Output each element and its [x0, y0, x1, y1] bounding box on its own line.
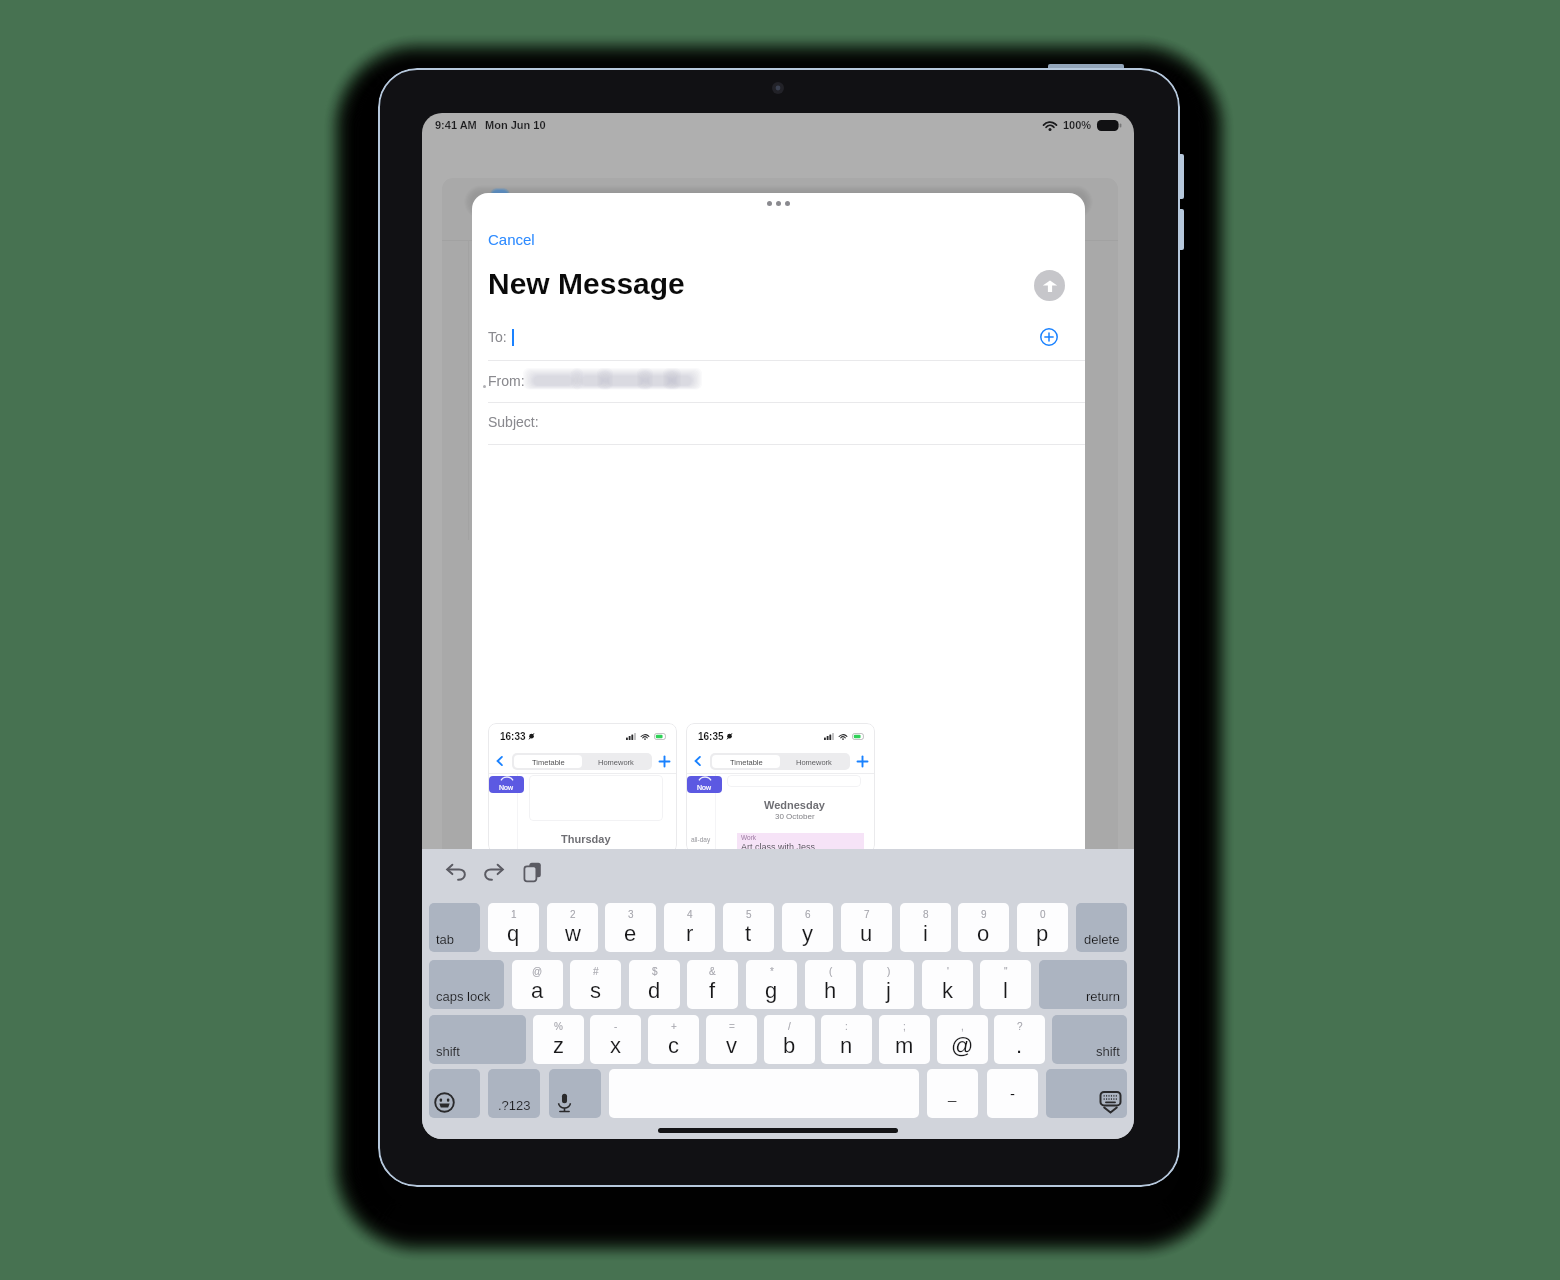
staticText: To:: [488, 329, 507, 345]
button[interactable]: .?123: [488, 1069, 540, 1118]
button[interactable]: return: [1039, 960, 1127, 1009]
staticText: Subject:: [488, 414, 539, 430]
button[interactable]: delete: [1076, 903, 1127, 952]
staticText: 4: [687, 909, 693, 920]
button[interactable]: Paste: [520, 859, 546, 885]
staticText: Wednesday: [764, 799, 825, 811]
staticText: caps lock: [436, 989, 491, 1004]
staticText: t: [745, 921, 752, 946]
staticText: r: [686, 921, 694, 946]
button[interactable]: 0: [1017, 903, 1068, 952]
button[interactable]: #: [570, 960, 621, 1009]
staticText: shift: [1096, 1044, 1120, 1059]
staticText: x: [610, 1033, 621, 1058]
button[interactable]: ): [863, 960, 914, 1009]
staticText: m: [895, 1033, 914, 1058]
button[interactable]: 6: [782, 903, 833, 952]
staticText: 8: [923, 909, 929, 920]
button[interactable]: +: [648, 1015, 699, 1064]
button[interactable]: (: [805, 960, 856, 1009]
button[interactable]: From:: [488, 370, 1085, 392]
staticText: g: [765, 978, 778, 1003]
staticText: i: [923, 921, 928, 946]
staticText: :: [845, 1021, 848, 1032]
button[interactable]: 9: [958, 903, 1009, 952]
button[interactable]: Redo: [481, 859, 507, 885]
button[interactable]: /: [764, 1015, 815, 1064]
staticText: $: [652, 966, 658, 977]
staticText: 7: [864, 909, 870, 920]
staticText: 2: [570, 909, 576, 920]
button[interactable]: Send: [1034, 270, 1065, 301]
button[interactable]: shift: [1052, 1015, 1127, 1064]
button[interactable]: 1: [488, 903, 539, 952]
staticText: New Message: [488, 267, 685, 301]
button[interactable]: Hide keyboard: [1046, 1069, 1127, 1118]
button[interactable]: 5: [723, 903, 774, 952]
staticText: .: [1016, 1033, 1023, 1058]
button[interactable]: 16:33: [488, 723, 677, 853]
button[interactable]: tab: [429, 903, 480, 952]
staticText: Work: [741, 834, 757, 841]
staticText: z: [553, 1033, 564, 1058]
staticText: Timetable: [532, 758, 565, 766]
staticText: &: [709, 966, 716, 977]
button[interactable]: ': [922, 960, 973, 1009]
button[interactable]: 4: [664, 903, 715, 952]
staticText: return: [1086, 989, 1120, 1004]
staticText: From:: [488, 373, 525, 389]
button[interactable]: :: [821, 1015, 872, 1064]
button[interactable]: &: [687, 960, 738, 1009]
staticText: b: [783, 1033, 796, 1058]
staticText: 16:35: [698, 731, 724, 742]
staticText: @: [951, 1033, 974, 1058]
button[interactable]: Subject:: [488, 411, 1085, 433]
button[interactable]: caps lock: [429, 960, 504, 1009]
button[interactable]: _: [927, 1069, 978, 1118]
button[interactable]: Emoji: [429, 1069, 480, 1118]
button[interactable]: Dictate: [549, 1069, 601, 1118]
staticText: 3: [628, 909, 634, 920]
staticText: w: [565, 921, 581, 946]
button[interactable]: -: [590, 1015, 641, 1064]
button[interactable]: ,: [937, 1015, 988, 1064]
staticText: =: [729, 1021, 735, 1032]
staticText: Homework: [598, 758, 634, 766]
button[interactable]: ": [980, 960, 1031, 1009]
button[interactable]: ?: [994, 1015, 1045, 1064]
staticText: e: [624, 921, 637, 946]
button[interactable]: @: [512, 960, 563, 1009]
button[interactable]: *: [746, 960, 797, 1009]
button[interactable]: Undo: [443, 859, 469, 885]
button[interactable]: 7: [841, 903, 892, 952]
staticText: %: [554, 1021, 563, 1032]
button[interactable]: Cancel: [488, 231, 535, 248]
staticText: ": [1004, 966, 1008, 977]
button[interactable]: 8: [900, 903, 951, 952]
button[interactable]: Add contact: [1040, 328, 1058, 346]
button[interactable]: =: [706, 1015, 757, 1064]
staticText: s: [590, 978, 601, 1003]
staticText: #: [593, 966, 599, 977]
button[interactable]: shift: [429, 1015, 526, 1064]
staticText: 100%: [1063, 119, 1092, 131]
button[interactable]: 3: [605, 903, 656, 952]
staticText: shift: [436, 1044, 460, 1059]
staticText: Now: [499, 784, 514, 792]
staticText: 6: [805, 909, 811, 920]
staticText: *: [770, 966, 774, 977]
staticText: u: [860, 921, 873, 946]
staticText: 0: [1040, 909, 1046, 920]
staticText: d: [648, 978, 661, 1003]
button[interactable]: 2: [547, 903, 598, 952]
button[interactable]: ;: [879, 1015, 930, 1064]
button[interactable]: To:: [488, 326, 1085, 348]
button[interactable]: %: [533, 1015, 584, 1064]
button[interactable]: -: [987, 1069, 1038, 1118]
staticText: f: [709, 978, 716, 1003]
button[interactable]: $: [629, 960, 680, 1009]
button[interactable]: 16:35: [686, 723, 875, 853]
staticText: ): [887, 966, 891, 977]
staticText: Cancel: [488, 231, 535, 248]
